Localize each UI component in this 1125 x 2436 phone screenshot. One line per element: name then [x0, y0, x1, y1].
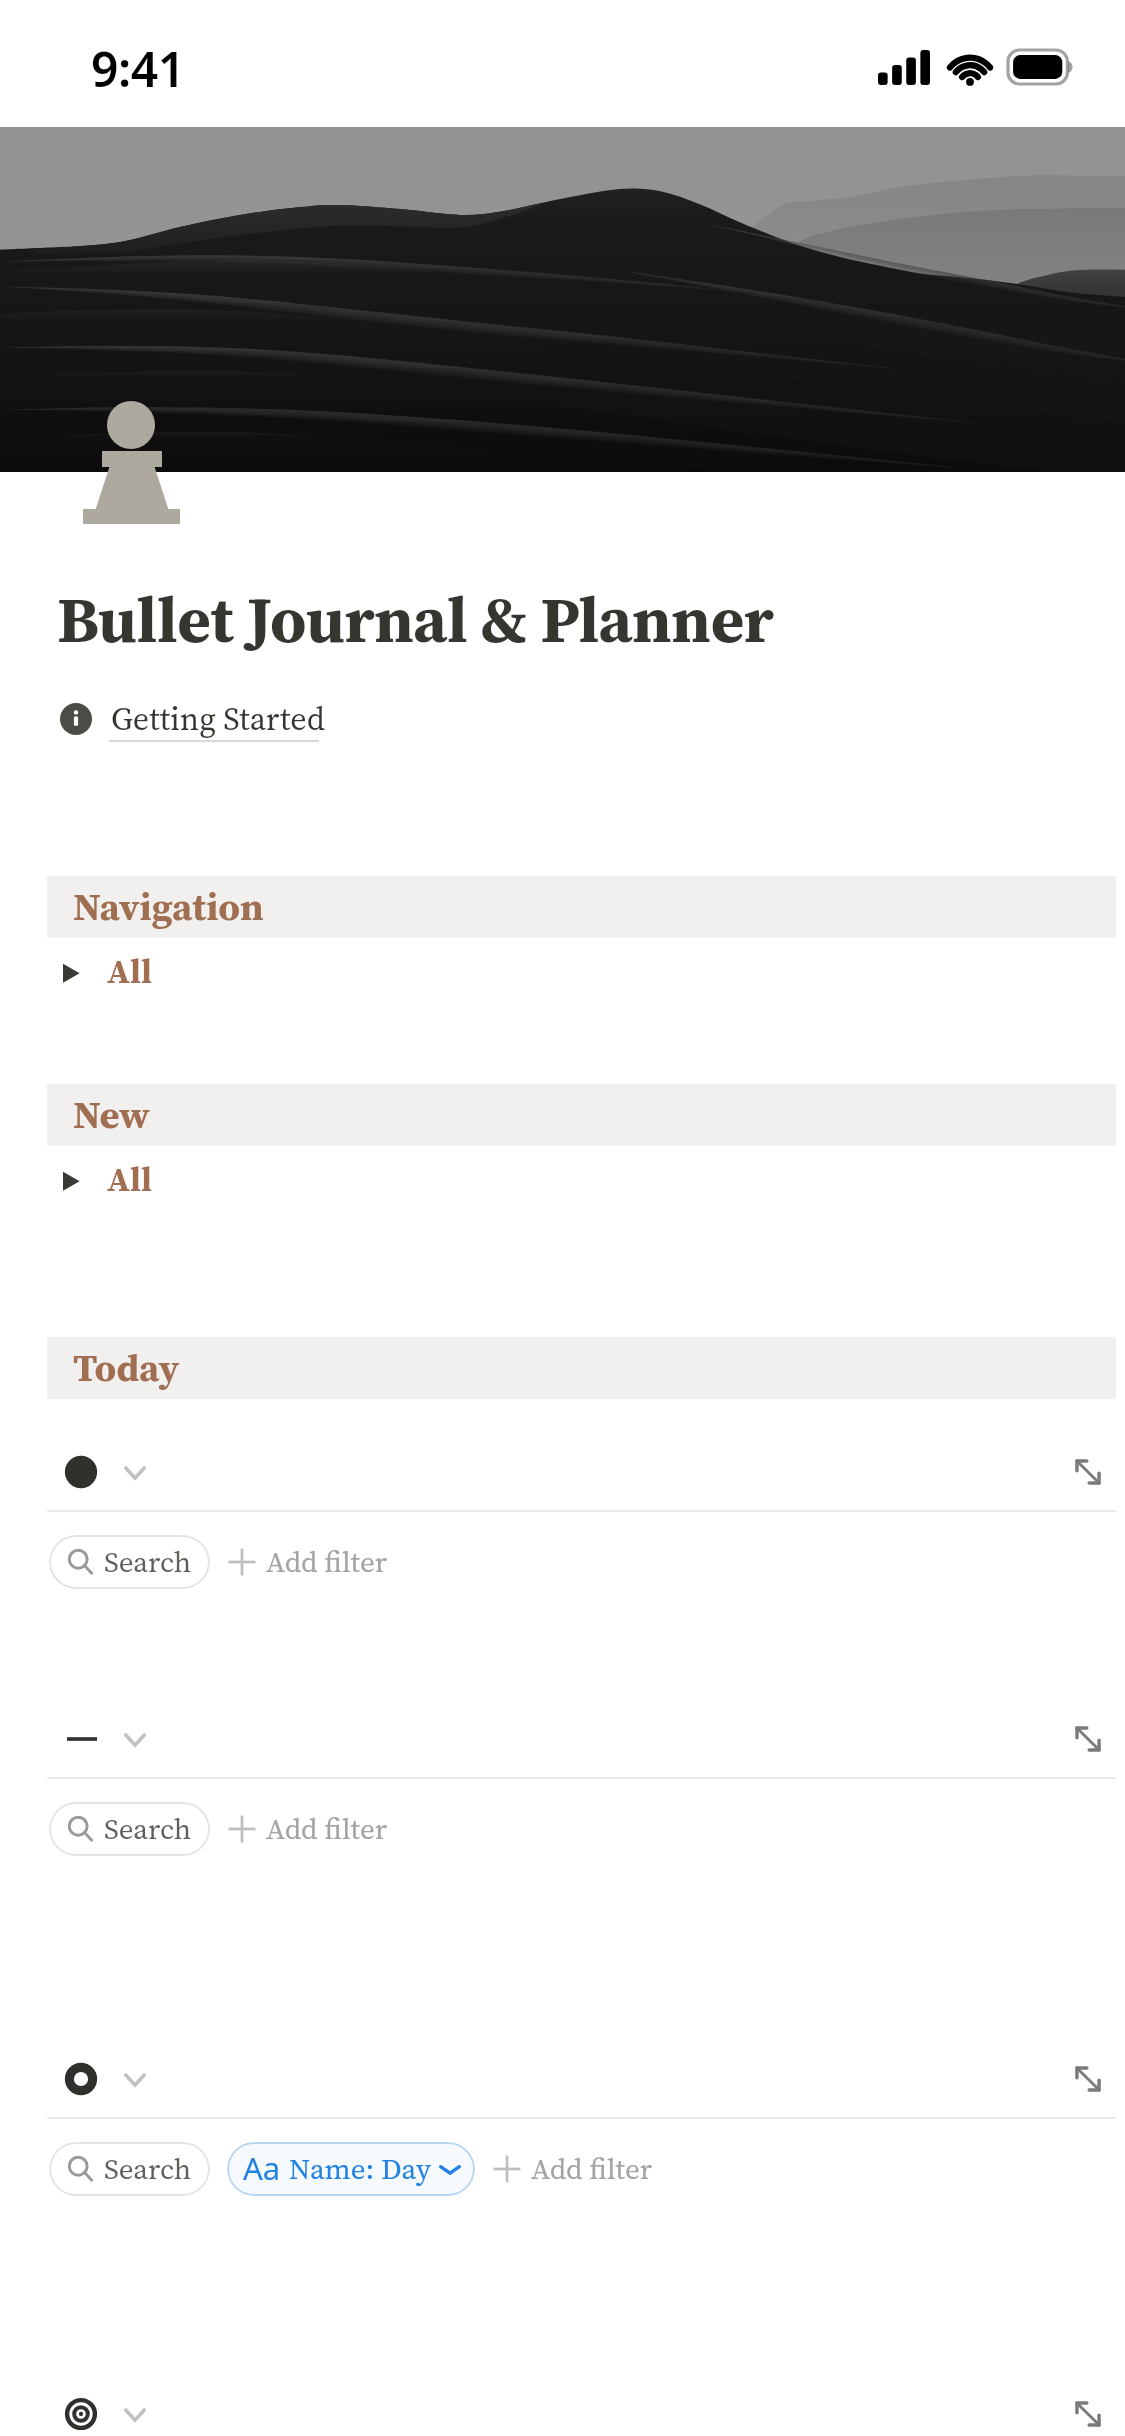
staticText: Getting Started	[111, 697, 325, 741]
staticText: Today	[73, 1341, 180, 1394]
staticText: All	[107, 1156, 152, 1203]
staticText: Navigation	[73, 880, 264, 933]
button[interactable]: Today	[47, 1337, 1116, 1399]
button[interactable]: Add filter	[222, 1802, 392, 1856]
button[interactable]: Expand database	[1064, 1448, 1112, 1496]
staticText: 9:41	[91, 36, 185, 101]
staticText: Add filter	[266, 1809, 388, 1849]
button[interactable]: Navigation	[47, 876, 1116, 938]
button[interactable]: Expand database	[1064, 2055, 1112, 2103]
staticText: All	[107, 948, 152, 995]
button[interactable]: Search	[49, 1535, 210, 1589]
staticText: Search	[104, 2149, 192, 2189]
button[interactable]: All	[47, 941, 447, 1001]
staticText: Add filter	[266, 1542, 388, 1582]
staticText: Bullet Journal & Planner	[57, 575, 774, 663]
staticText: Name: Day	[289, 2149, 431, 2189]
button[interactable]: Open database	[60, 1709, 260, 1769]
button[interactable]: Search	[49, 2142, 210, 2196]
staticText: Search	[104, 1809, 192, 1849]
button[interactable]: Open database	[60, 2049, 260, 2109]
button[interactable]: Add filter	[487, 2142, 657, 2196]
button[interactable]: Search	[49, 1802, 210, 1856]
staticText: Search	[104, 1542, 192, 1582]
button[interactable]: Expand database	[1064, 2390, 1112, 2436]
button[interactable]: Getting Started	[56, 692, 325, 746]
button[interactable]: Aa	[227, 2142, 475, 2196]
button[interactable]: New	[47, 1084, 1116, 1146]
button[interactable]: Add filter	[222, 1535, 392, 1589]
button[interactable]: Open database	[60, 1442, 260, 1502]
staticText: New	[73, 1088, 150, 1141]
button[interactable]: Open database	[60, 2384, 260, 2436]
staticText: Aa	[243, 2147, 281, 2189]
button[interactable]: Expand database	[1064, 1715, 1112, 1763]
button[interactable]: All	[47, 1149, 447, 1209]
staticText: Add filter	[531, 2149, 653, 2189]
